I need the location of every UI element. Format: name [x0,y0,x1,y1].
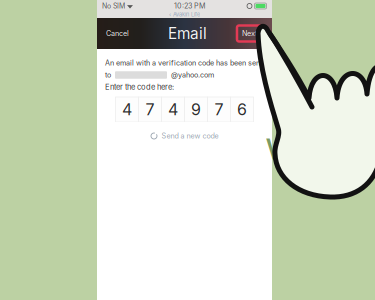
staticText: 6 [237,100,247,119]
staticText: 7 [145,100,154,119]
staticText: An email with a verification code has be… [105,59,262,67]
staticText: 10:23 PM [174,2,206,10]
staticText: ‹ Avakin Life [169,11,200,18]
staticText: to [105,71,111,79]
staticText: Enter the code here: [105,82,174,92]
staticText: Next [242,29,257,38]
staticText: wikiHow [265,121,375,169]
button[interactable]: Next [237,25,272,41]
staticText: 9 [191,100,201,119]
staticText: @yahoo.com [171,71,214,79]
button[interactable]: Send a new code [105,130,264,142]
staticText: 4 [168,100,178,119]
staticText: Email [168,24,207,43]
staticText: 7 [214,100,223,119]
staticText: Cancel [106,29,129,38]
staticText: Send a new code [161,132,218,140]
button[interactable]: Cancel [97,18,138,48]
staticText: No SIM [102,2,125,10]
staticText: 4 [122,100,132,119]
